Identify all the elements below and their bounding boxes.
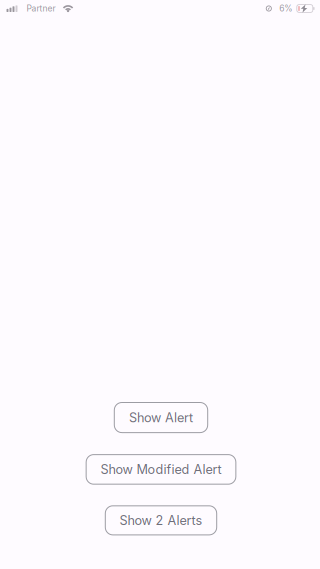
- staticText: Show Alert: [129, 410, 193, 425]
- staticText: 6%: [279, 3, 292, 14]
- staticText: Show Modified Alert: [100, 462, 221, 477]
- staticText: Partner: [26, 3, 55, 14]
- button[interactable]: Show Modified Alert: [86, 455, 236, 484]
- button[interactable]: Show Alert: [114, 402, 208, 433]
- staticText: Show 2 Alerts: [119, 513, 202, 528]
- button[interactable]: Show 2 Alerts: [105, 506, 217, 535]
